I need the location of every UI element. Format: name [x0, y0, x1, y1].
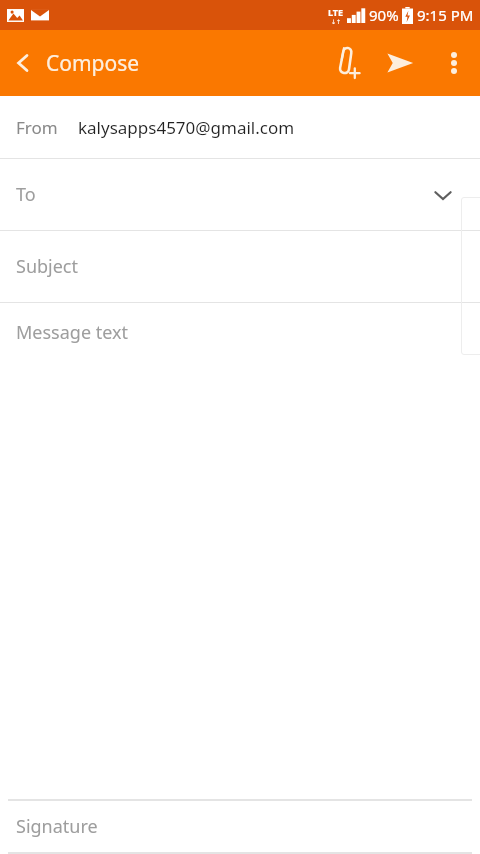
- button[interactable]: Expand recipients: [430, 182, 456, 208]
- staticText: From: [16, 116, 58, 139]
- staticText: Compose: [46, 49, 140, 78]
- button[interactable]: Attach file: [316, 35, 372, 91]
- other: Back: [12, 52, 34, 74]
- button[interactable]: Send: [372, 35, 428, 91]
- staticText: 90%: [369, 5, 399, 25]
- button[interactable]: To: [0, 159, 480, 230]
- staticText: To: [16, 182, 36, 207]
- button[interactable]: From: [0, 96, 480, 158]
- button[interactable]: Back: [0, 30, 150, 96]
- staticText: kalysapps4570@gmail.com: [78, 116, 295, 139]
- staticText: 9:15 PM: [417, 5, 474, 25]
- button[interactable]: Signature: [0, 801, 480, 852]
- staticText: LTE: [328, 6, 344, 18]
- button[interactable]: Subject: [0, 231, 480, 302]
- staticText: Message text: [16, 320, 129, 345]
- staticText: Subject: [16, 254, 79, 279]
- staticText: ↓↑: [331, 18, 342, 25]
- button[interactable]: Message text: [0, 303, 480, 799]
- button[interactable]: More options: [428, 37, 480, 89]
- staticText: Signature: [16, 814, 98, 839]
